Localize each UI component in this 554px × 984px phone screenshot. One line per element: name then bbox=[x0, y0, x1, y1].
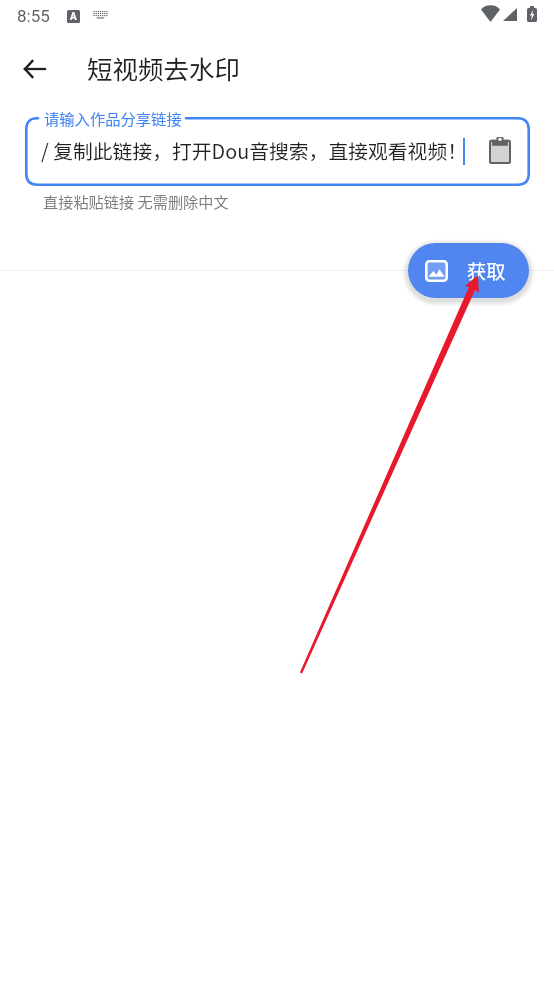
button[interactable]: Back bbox=[10, 44, 59, 93]
staticText: / 复制此链接，打开Dou音搜索，直接观看视频！ bbox=[41, 136, 467, 165]
staticText: A bbox=[70, 11, 77, 23]
button[interactable]: 获取 bbox=[408, 243, 529, 298]
button[interactable]: Paste from clipboard bbox=[482, 132, 518, 168]
staticText: 获取 bbox=[467, 257, 506, 285]
staticText: 直接粘贴链接 无需删除中文 bbox=[43, 190, 229, 212]
staticText: 短视频去水印 bbox=[87, 49, 241, 86]
staticText: 8:55 bbox=[17, 6, 50, 26]
staticText: 请输入作品分享链接 bbox=[44, 107, 182, 129]
